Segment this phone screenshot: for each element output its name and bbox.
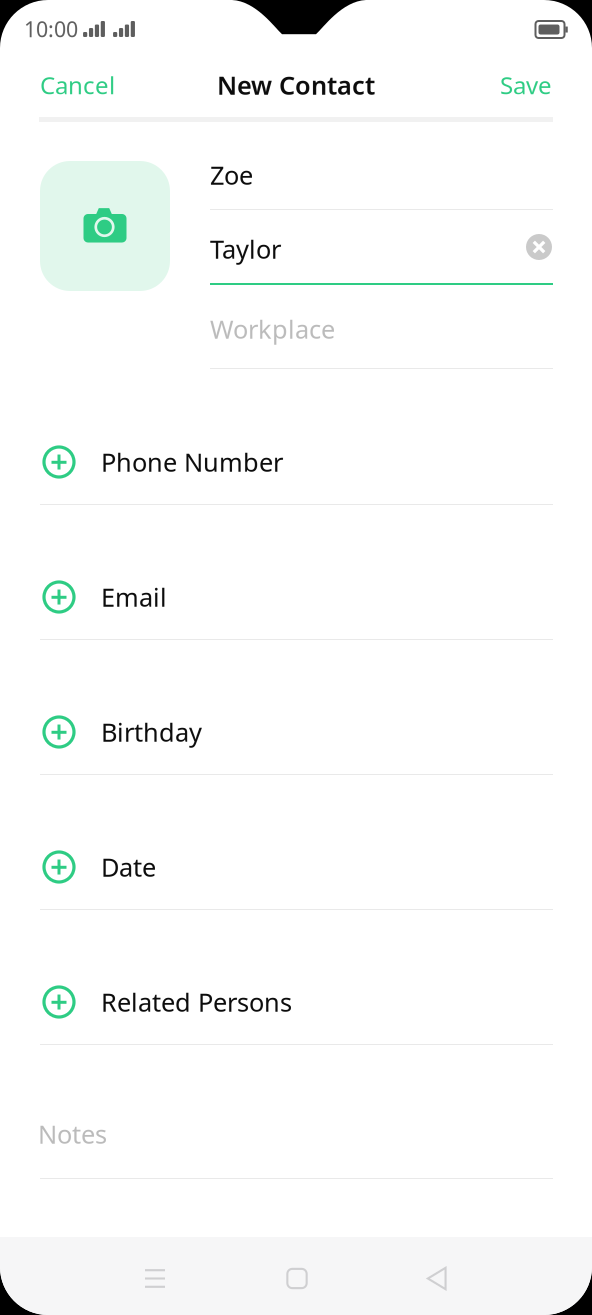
button[interactable]: Related Persons xyxy=(40,954,553,1050)
staticText: 10:00 xyxy=(24,15,78,43)
staticText: Zoe xyxy=(210,158,253,192)
button[interactable]: Birthday xyxy=(40,684,553,780)
button[interactable]: Email xyxy=(40,549,553,645)
button[interactable]: Clear text xyxy=(517,225,561,269)
staticText: Notes xyxy=(38,1117,107,1151)
button[interactable]: Back xyxy=(402,1243,472,1313)
staticText: Workplace xyxy=(210,312,335,346)
staticText: Phone Number xyxy=(101,445,283,479)
staticText: Related Persons xyxy=(101,985,292,1019)
staticText: New Contact xyxy=(217,68,375,102)
staticText: Date xyxy=(101,850,156,884)
staticText: Cancel xyxy=(40,69,115,101)
button[interactable]: Date xyxy=(40,819,553,915)
staticText: Taylor xyxy=(210,232,281,266)
staticText: Email xyxy=(101,580,167,614)
button[interactable]: Home xyxy=(262,1243,332,1313)
button[interactable]: Recent apps xyxy=(120,1243,190,1313)
button[interactable]: Phone Number xyxy=(40,414,553,510)
button[interactable]: Save xyxy=(452,62,552,108)
button[interactable]: Cancel xyxy=(40,62,150,108)
button[interactable]: Notes xyxy=(38,1094,551,1174)
button[interactable]: Add photo xyxy=(40,161,170,291)
staticText: Birthday xyxy=(101,715,202,749)
staticText: Save xyxy=(500,69,552,101)
